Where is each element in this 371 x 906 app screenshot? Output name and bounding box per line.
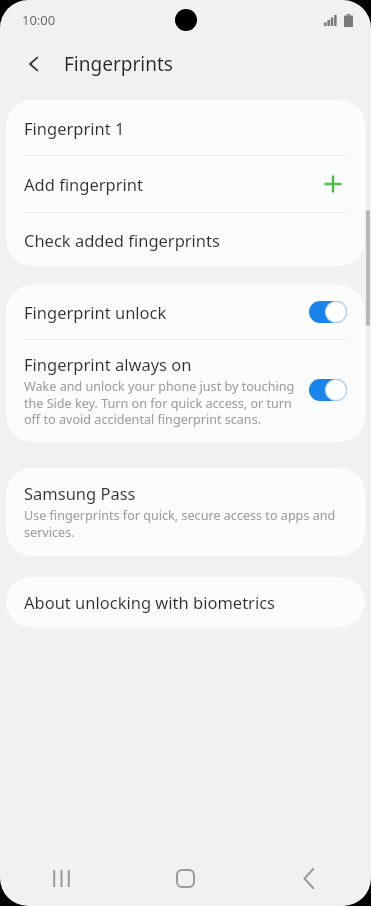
- staticText: Wake and unlock your phone just by touch…: [24, 378, 295, 427]
- staticText: Samsung Pass: [24, 482, 136, 504]
- button[interactable]: Fingerprint unlock: [6, 285, 365, 339]
- button[interactable]: About unlocking with biometrics: [6, 577, 365, 627]
- staticText: About unlocking with biometrics: [24, 591, 276, 613]
- button[interactable]: Home: [123, 850, 247, 906]
- button[interactable]: Back: [247, 850, 371, 906]
- other: Add fingerprint: [323, 174, 343, 194]
- button[interactable]: Check added fingerprints: [6, 213, 365, 266]
- staticText: Fingerprint unlock: [24, 301, 309, 323]
- staticText: Fingerprint always on: [24, 353, 192, 375]
- staticText: Fingerprint 1: [24, 117, 125, 139]
- button[interactable]: Add fingerprint: [6, 156, 365, 212]
- button[interactable]: Back: [14, 44, 54, 84]
- button[interactable]: Fingerprint 1: [6, 100, 365, 155]
- staticText: Check added fingerprints: [24, 229, 220, 251]
- staticText: Add fingerprint: [24, 173, 323, 195]
- button[interactable]: Samsung Pass: [6, 468, 365, 556]
- staticText: 10:00: [22, 11, 56, 29]
- button[interactable]: Fingerprint always on: [6, 340, 365, 442]
- staticText: Use fingerprints for quick, secure acces…: [24, 507, 347, 540]
- staticText: Fingerprints: [64, 51, 173, 77]
- button[interactable]: Recent apps: [0, 850, 123, 906]
